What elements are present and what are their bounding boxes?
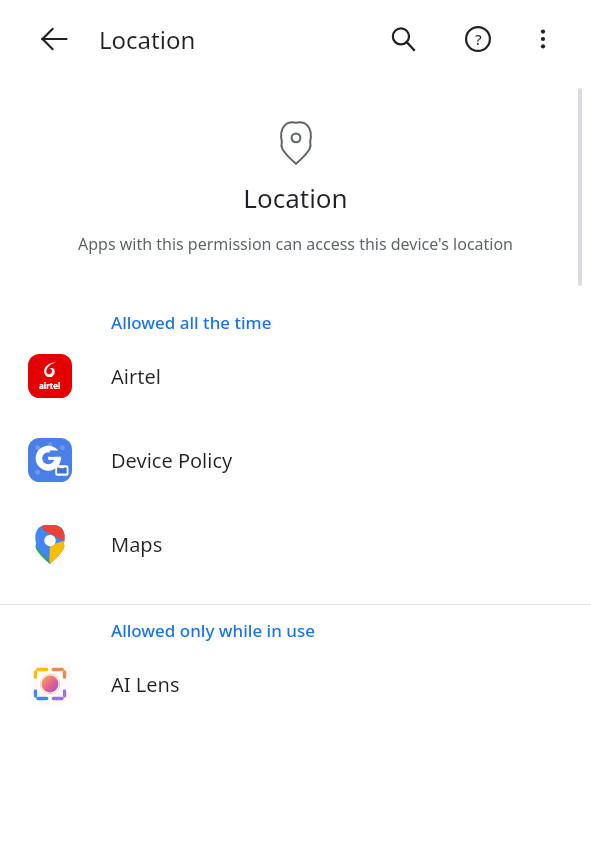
button[interactable]: Search: [379, 15, 427, 63]
staticText: Airtel: [111, 363, 161, 390]
button[interactable]: Back: [30, 15, 78, 63]
button[interactable]: Help: [454, 15, 502, 63]
staticText: Location: [243, 180, 348, 215]
staticText: Location: [99, 23, 196, 56]
button[interactable]: Device Policy: [0, 418, 591, 502]
button[interactable]: AI Lens: [0, 642, 591, 726]
staticText: Device Policy: [111, 447, 233, 474]
button[interactable]: airtel: [0, 334, 591, 418]
button[interactable]: Maps: [0, 502, 591, 586]
staticText: airtel: [39, 380, 61, 391]
staticText: ?: [475, 29, 482, 49]
staticText: Allowed only while in use: [111, 619, 315, 642]
button[interactable]: More options: [519, 15, 567, 63]
staticText: AI Lens: [111, 671, 180, 698]
staticText: Maps: [111, 531, 163, 558]
staticText: Allowed all the time: [111, 311, 272, 334]
staticText: Apps with this permission can access thi…: [64, 233, 527, 255]
